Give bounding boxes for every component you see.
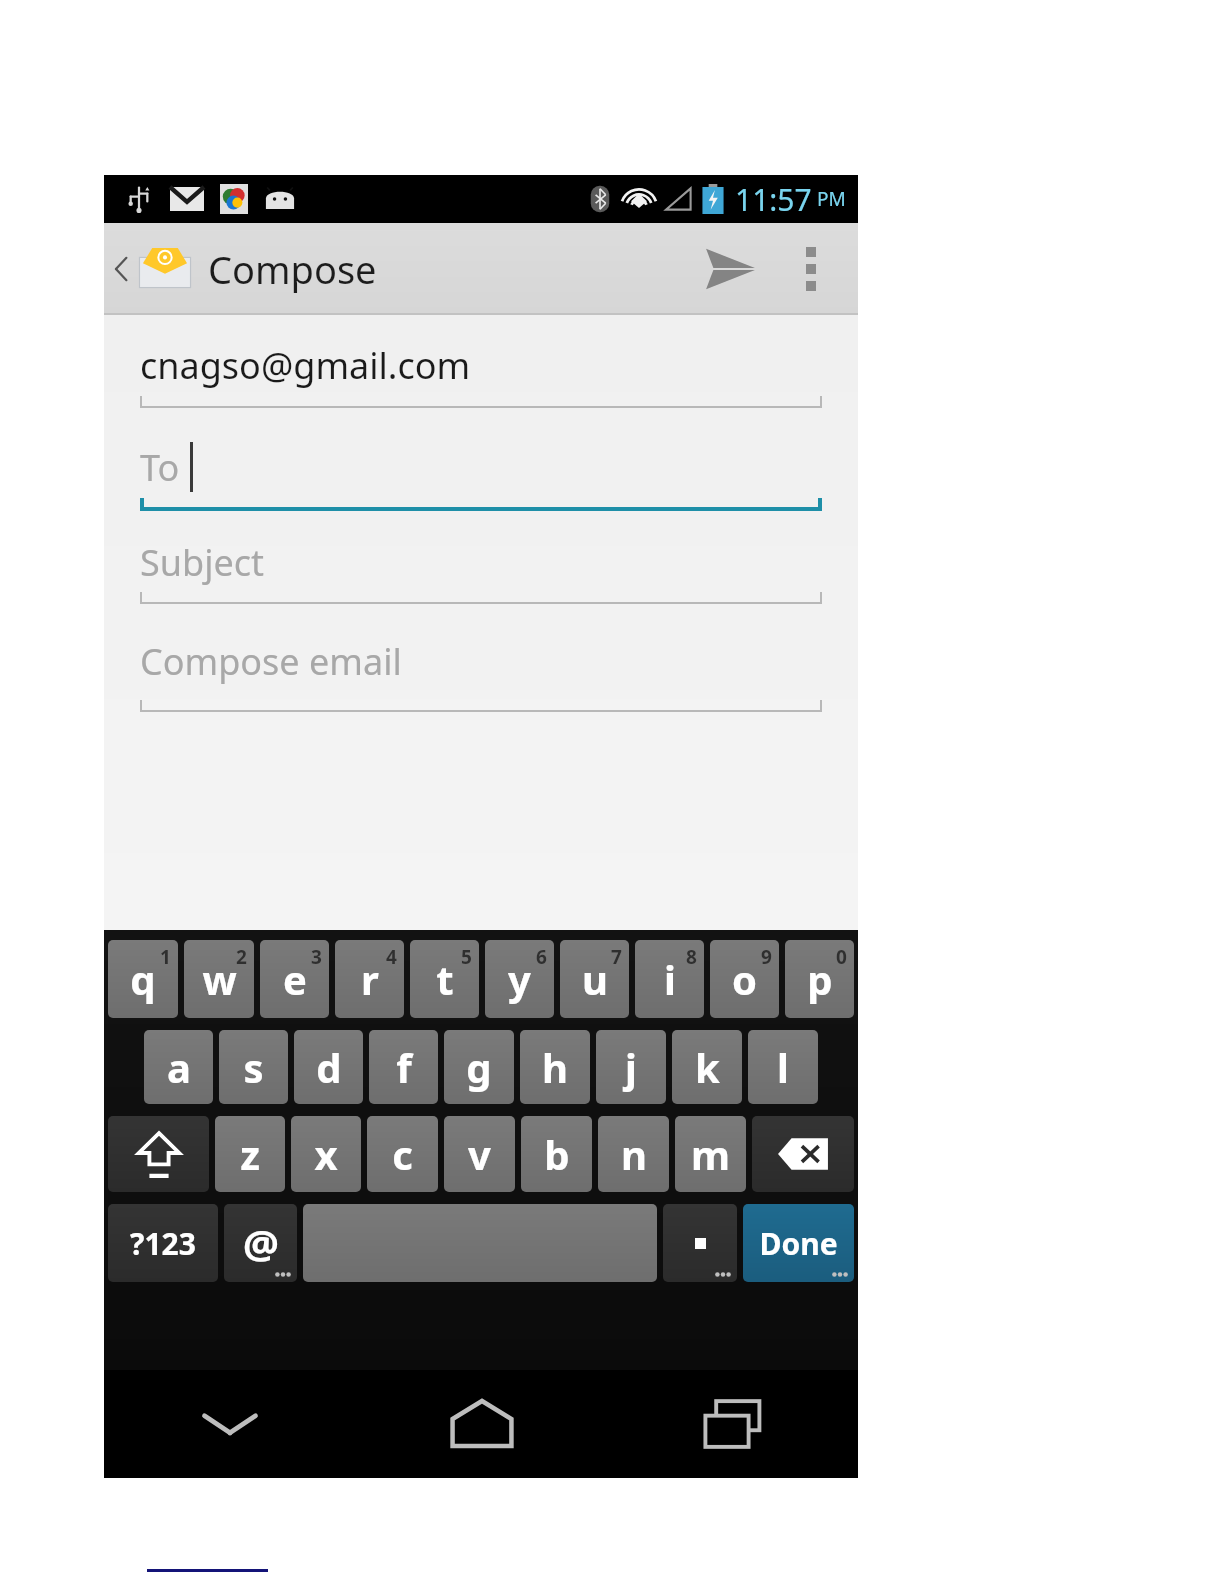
button[interactable]: v — [444, 1116, 515, 1192]
staticText: c — [392, 1127, 413, 1181]
button[interactable]: m — [675, 1116, 746, 1192]
button[interactable]: Subject — [140, 535, 822, 605]
button[interactable]: f — [369, 1030, 438, 1104]
staticText: Compose — [208, 243, 377, 295]
staticText: x — [314, 1127, 338, 1181]
button[interactable]: i — [635, 940, 704, 1018]
staticText: 2 — [236, 944, 247, 970]
staticText: q — [130, 952, 156, 1006]
staticText: r — [361, 952, 379, 1006]
staticText: n — [621, 1127, 647, 1181]
button[interactable]: Done — [743, 1204, 854, 1282]
button[interactable]: n — [598, 1116, 669, 1192]
button[interactable]: s — [219, 1030, 288, 1104]
button[interactable]: l — [748, 1030, 818, 1104]
button[interactable]: u — [560, 940, 629, 1018]
staticText: u — [582, 952, 608, 1006]
staticText: 11:57 — [735, 179, 812, 220]
button[interactable]: @ — [224, 1204, 297, 1282]
button[interactable]: w — [184, 940, 254, 1018]
button[interactable]: ?123 — [108, 1204, 218, 1282]
staticText: 0 — [836, 944, 847, 970]
staticText: Compose email — [140, 637, 402, 686]
staticText: PM — [817, 186, 846, 212]
staticText: 1 — [160, 944, 171, 970]
button[interactable]: p — [785, 940, 854, 1018]
button[interactable]: r — [335, 940, 404, 1018]
button[interactable]: k — [672, 1030, 742, 1104]
button[interactable]: o — [710, 940, 779, 1018]
staticText: p — [807, 952, 833, 1006]
button[interactable]: b — [521, 1116, 592, 1192]
button[interactable]: Hide keyboard — [104, 1370, 356, 1478]
button[interactable]: To — [140, 437, 822, 513]
staticText: Done — [759, 1223, 838, 1264]
staticText: w — [202, 952, 237, 1006]
button[interactable]: Navigate up — [104, 230, 198, 308]
staticText: s — [243, 1040, 264, 1094]
button[interactable]: Compose email — [140, 625, 822, 713]
staticText: a — [167, 1040, 191, 1094]
staticText: 7 — [611, 944, 622, 970]
button[interactable]: cnagso@gmail.com — [140, 337, 822, 409]
button[interactable]: d — [294, 1030, 363, 1104]
staticText: y — [508, 952, 531, 1006]
staticText: o — [732, 952, 757, 1006]
staticText: i — [664, 952, 676, 1006]
staticText: j — [625, 1040, 637, 1094]
button[interactable]: More options — [776, 223, 846, 315]
button[interactable]: j — [596, 1030, 666, 1104]
staticText: g — [466, 1040, 492, 1094]
staticText: 9 — [761, 944, 772, 970]
button[interactable]: Delete — [752, 1116, 854, 1192]
button[interactable]: h — [520, 1030, 590, 1104]
staticText: d — [316, 1040, 342, 1094]
staticText: ?123 — [130, 1223, 196, 1264]
staticText: 4 — [386, 944, 397, 970]
staticText: @ — [243, 1216, 279, 1270]
button[interactable]: y — [485, 940, 554, 1018]
staticText: b — [544, 1127, 570, 1181]
button[interactable]: q — [108, 940, 178, 1018]
button[interactable]: Shift — [108, 1116, 209, 1192]
staticText: h — [542, 1040, 568, 1094]
staticText: z — [240, 1127, 260, 1181]
staticText: e — [283, 952, 307, 1006]
staticText: l — [777, 1040, 789, 1094]
button[interactable]: Recent apps — [607, 1370, 858, 1478]
staticText: 5 — [461, 944, 472, 970]
staticText: cnagso@gmail.com — [140, 341, 471, 390]
button[interactable]: Space — [303, 1204, 657, 1282]
button[interactable]: x — [291, 1116, 361, 1192]
button[interactable]: a — [144, 1030, 213, 1104]
staticText: 8 — [686, 944, 697, 970]
staticText: 3 — [311, 944, 322, 970]
staticText: f — [396, 1040, 412, 1094]
staticText: Subject — [140, 538, 265, 587]
staticText: t — [436, 952, 454, 1006]
button[interactable]: g — [444, 1030, 514, 1104]
button[interactable]: Send — [684, 223, 776, 315]
staticText: m — [691, 1127, 730, 1181]
staticText: k — [695, 1040, 720, 1094]
staticText: 6 — [536, 944, 547, 970]
button[interactable]: t — [410, 940, 479, 1018]
button[interactable]: c — [367, 1116, 438, 1192]
button[interactable]: z — [215, 1116, 285, 1192]
button[interactable]: Home — [356, 1370, 607, 1478]
button[interactable]: e — [260, 940, 329, 1018]
staticText: v — [468, 1127, 491, 1181]
staticText: To — [140, 443, 180, 492]
button[interactable]: Period — [663, 1204, 737, 1282]
